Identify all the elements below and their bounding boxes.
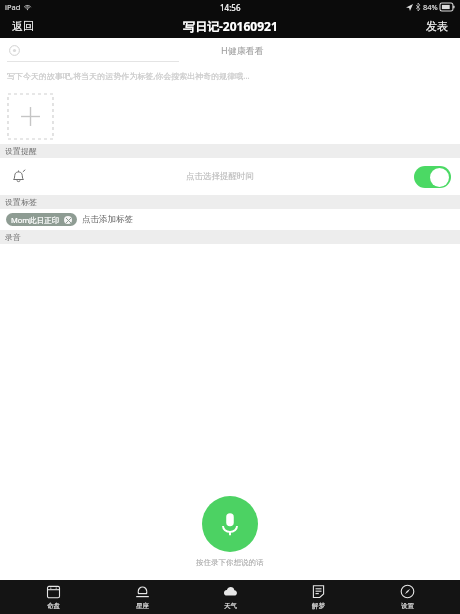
staticText: 84%	[423, 2, 438, 12]
button[interactable]: 天气	[195, 580, 265, 614]
button[interactable]: Mom此日正印	[6, 213, 77, 226]
button[interactable]: 设置	[372, 580, 442, 614]
staticText: 发表	[426, 19, 448, 33]
staticText: iPad	[5, 2, 21, 12]
button[interactable]: Add photo	[8, 94, 53, 139]
staticText: 写下今天的故事吧,将当天的运势作为标签,你会搜索出神奇的规律哦...	[7, 70, 250, 81]
staticText: 点击选择提醒时间	[186, 171, 254, 182]
button[interactable]: 点击添加标签	[82, 214, 133, 225]
staticText: 返回	[12, 19, 34, 33]
staticText: 录音	[5, 232, 21, 242]
button[interactable]: 命盘	[18, 580, 88, 614]
staticText: 设置标签	[5, 197, 37, 207]
staticText: 解梦	[312, 602, 325, 610]
staticText: 写日记-20160921	[183, 18, 278, 34]
staticText: 点击添加标签	[82, 214, 133, 225]
staticText: 设置提醒	[5, 146, 37, 156]
staticText: 星座	[136, 602, 149, 610]
button[interactable]: 解梦	[283, 580, 353, 614]
staticText: 14:56	[220, 2, 241, 13]
button[interactable]: 星座	[107, 580, 177, 614]
staticText: H健康看看	[221, 44, 264, 56]
staticText: 按住录下你想说的话	[196, 558, 264, 567]
staticText: 设置	[401, 602, 414, 610]
button[interactable]: Reminder toggle	[414, 166, 451, 188]
button[interactable]: Mood	[7, 43, 21, 57]
button[interactable]: 返回	[0, 14, 46, 38]
staticText: 天气	[224, 602, 237, 610]
button[interactable]: 点击选择提醒时间	[0, 158, 460, 195]
staticText: 命盘	[47, 602, 60, 610]
staticText: Mom此日正印	[11, 215, 60, 225]
button[interactable]: 发表	[414, 14, 460, 38]
button[interactable]: Hold to record	[202, 496, 258, 552]
